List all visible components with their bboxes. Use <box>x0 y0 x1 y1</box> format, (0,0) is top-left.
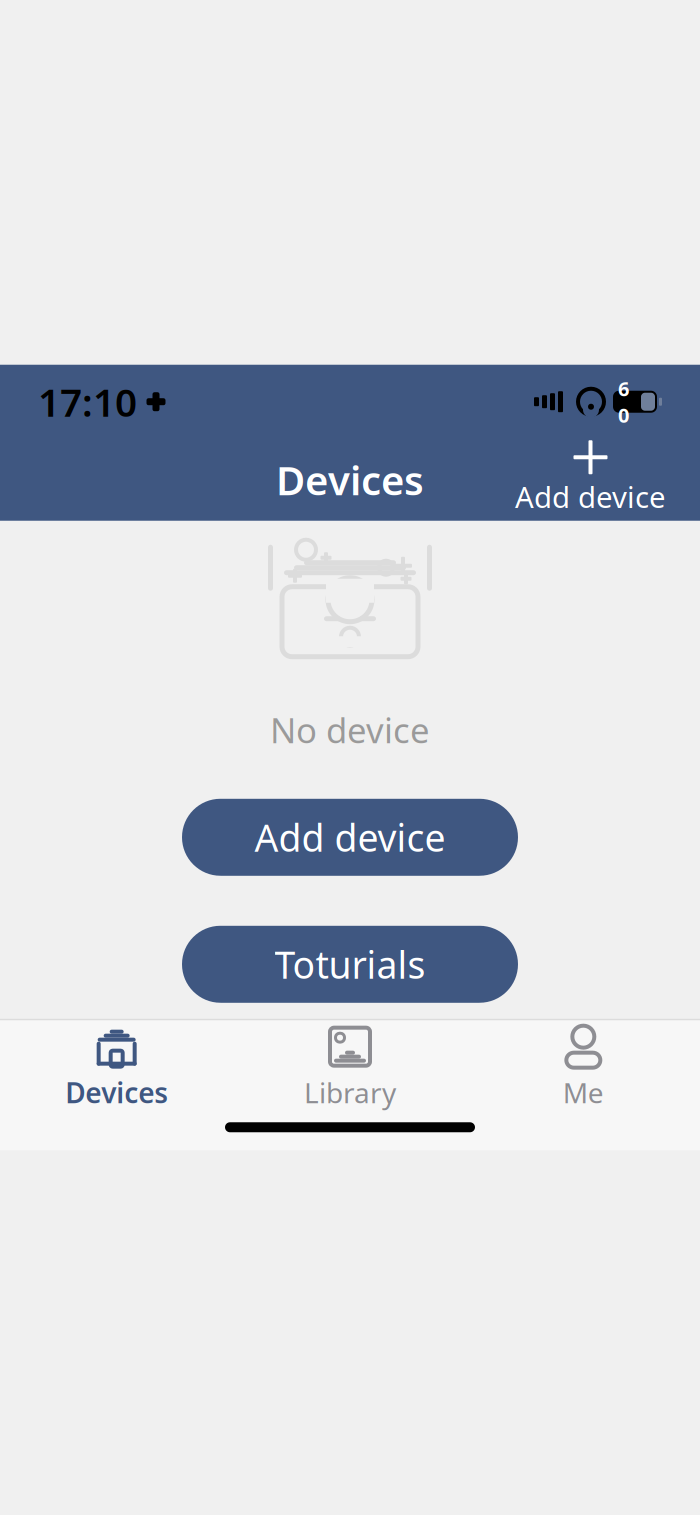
button[interactable]: Library <box>233 1014 467 1119</box>
button[interactable]: Add device <box>507 439 674 520</box>
button[interactable]: Devices <box>0 1014 233 1119</box>
button[interactable]: Toturials <box>182 926 518 1003</box>
staticText: Add device <box>254 812 445 862</box>
staticText: Devices <box>276 453 424 506</box>
staticText: Library <box>304 1074 396 1111</box>
staticText: Toturials <box>274 939 425 989</box>
staticText: Add device <box>515 477 666 516</box>
staticText: Me <box>563 1074 604 1111</box>
staticText: 60 <box>618 375 629 428</box>
staticText: 17:10 <box>38 376 137 427</box>
staticText: Devices <box>65 1074 168 1111</box>
button[interactable]: Add device <box>182 799 518 876</box>
button[interactable]: Me <box>467 1014 700 1119</box>
staticText: No device <box>270 707 430 753</box>
